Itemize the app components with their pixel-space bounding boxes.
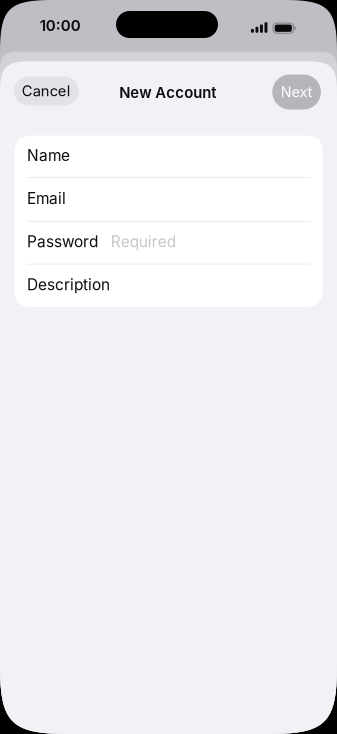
button[interactable]: Password (14, 222, 323, 264)
staticText: Password (27, 232, 98, 251)
staticText: Description (27, 275, 110, 294)
button[interactable]: Description (14, 265, 323, 307)
staticText: Required (111, 232, 176, 251)
button[interactable]: Cancel (14, 76, 79, 106)
button[interactable]: Next (272, 74, 321, 109)
staticText: Name (27, 146, 70, 165)
button[interactable]: Email (14, 178, 323, 220)
staticText: New Account (119, 84, 216, 102)
staticText: Cancel (22, 82, 71, 100)
staticText: Next (281, 83, 313, 101)
staticText: Email (27, 189, 66, 208)
staticText: 10:00 (40, 16, 81, 35)
button[interactable]: Name (14, 135, 323, 177)
